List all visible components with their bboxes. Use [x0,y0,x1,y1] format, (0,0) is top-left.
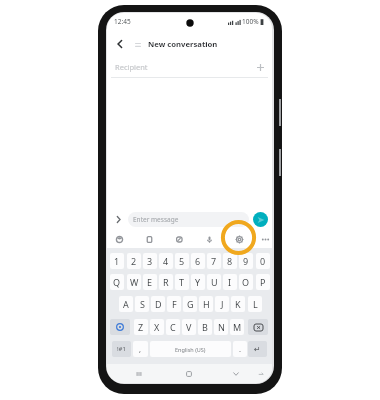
button[interactable]: , [133,341,148,357]
button[interactable]: Y [191,274,205,290]
staticText: U [211,276,218,288]
staticText: 3 [147,255,153,267]
staticText: X [154,321,160,333]
button[interactable]: 8 [223,253,237,269]
button[interactable]: B [198,319,212,335]
staticText: R [163,276,169,288]
button[interactable]: P [256,274,270,290]
staticText: M [233,321,242,333]
button[interactable]: K [231,296,245,312]
staticText: V [186,321,192,333]
staticText: 5 [179,255,185,267]
button[interactable]: Z [134,319,148,335]
staticText: !#1 [117,345,126,353]
button[interactable]: 6 [191,253,205,269]
button[interactable]: I [223,274,237,290]
button[interactable]: Add recipient [253,60,267,74]
button[interactable]: R [159,274,173,290]
staticText: 8 [227,255,233,267]
staticText: English (US) [175,346,206,353]
staticText: New conversation [148,39,218,49]
button[interactable]: Q [110,274,124,290]
button[interactable]: 3 [143,253,157,269]
staticText: O [242,276,250,288]
button[interactable]: Stickers pack [172,229,186,249]
button[interactable]: G [183,296,197,312]
staticText: N [218,321,225,333]
staticText: 7 [211,255,217,267]
staticText: Z [138,321,144,333]
button[interactable]: More options [258,229,272,249]
staticText: I [228,276,232,288]
staticText: G [187,298,194,310]
staticText: J [221,298,224,310]
button[interactable]: Hide keyboard [253,365,269,382]
button[interactable]: Settings [232,229,246,249]
button[interactable]: 7 [207,253,221,269]
staticText: Y [195,276,201,288]
button[interactable]: Shift [110,319,130,335]
button[interactable]: 2 [127,253,141,269]
button[interactable]: D [151,296,165,312]
staticText: B [202,321,208,333]
button[interactable]: Backspace [248,319,268,335]
button[interactable]: Contacts [130,37,145,52]
staticText: ↵ [254,345,261,354]
button[interactable]: Send [253,212,268,227]
staticText: 2 [131,255,137,267]
staticText: P [260,276,266,288]
button[interactable]: H [199,296,213,312]
button[interactable]: 9 [239,253,253,269]
button[interactable]: L [248,296,262,312]
staticText: Q [113,276,121,288]
button[interactable]: E [143,274,157,290]
staticText: W [130,276,139,288]
button[interactable]: Enter [248,341,267,357]
button[interactable]: Home [181,365,197,382]
button[interactable]: J [215,296,229,312]
staticText: L [253,298,258,310]
button[interactable]: . [233,341,247,357]
button[interactable]: 1 [110,253,124,269]
staticText: 9 [243,255,249,267]
staticText: 12:45 [114,17,131,26]
staticText: E [147,276,153,288]
button[interactable]: S [135,296,149,312]
button[interactable]: O [239,274,253,290]
staticText: D [155,298,162,310]
staticText: 100% [242,17,259,26]
button[interactable]: 0 [256,253,270,269]
staticText: T [179,276,185,288]
button[interactable]: M [230,319,244,335]
staticText: 6 [195,255,201,267]
button[interactable]: Expand toolbar [111,212,125,226]
button[interactable]: Back [228,365,244,382]
button[interactable]: A [119,296,133,312]
button[interactable]: Recents [131,365,147,382]
button[interactable]: Stickers [112,229,126,249]
staticText: 4 [163,255,169,267]
staticText: A [123,298,129,310]
staticText: Recipient [115,62,148,72]
button[interactable]: W [127,274,141,290]
staticText: Enter message [133,215,179,224]
staticText: , [139,344,142,354]
button[interactable]: N [214,319,228,335]
button[interactable]: Enter message [128,212,249,227]
button[interactable]: T [175,274,189,290]
button[interactable]: English (US) [150,341,231,357]
button[interactable]: Back [111,35,129,53]
button[interactable]: F [167,296,181,312]
staticText: S [140,298,145,310]
staticText: . [239,344,242,354]
button[interactable]: 4 [159,253,173,269]
button[interactable]: U [207,274,221,290]
button[interactable]: Voice recording [202,229,216,249]
button[interactable]: 5 [175,253,189,269]
staticText: C [170,321,176,333]
button[interactable]: V [182,319,196,335]
button[interactable]: C [166,319,180,335]
button[interactable]: X [150,319,164,335]
button[interactable]: Symbols [112,341,131,357]
button[interactable]: Gallery [142,229,156,249]
